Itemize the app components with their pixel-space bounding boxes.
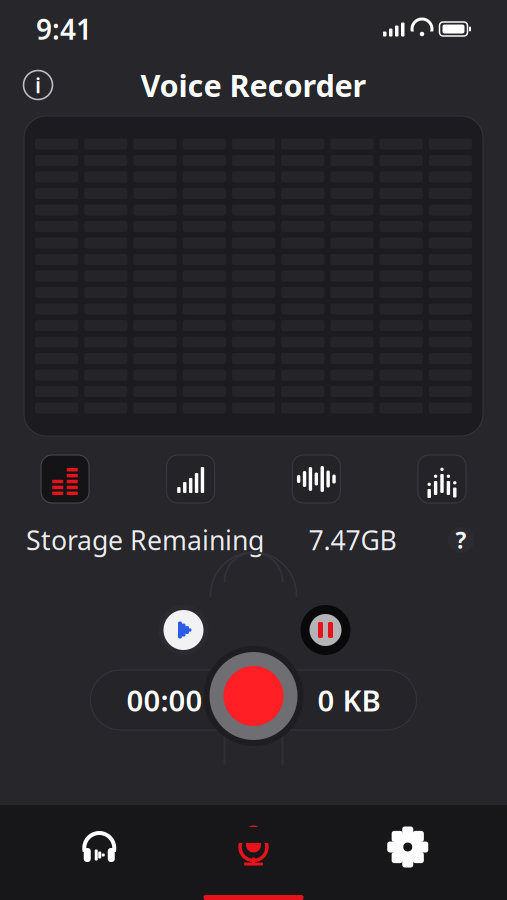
staticText: 00:00 bbox=[126, 680, 202, 719]
button[interactable]: Bar meter bbox=[36, 450, 94, 508]
staticText: 7.47GB bbox=[308, 522, 396, 558]
button[interactable]: Waveform bbox=[287, 450, 345, 508]
staticText: Storage Remaining bbox=[26, 522, 264, 558]
button[interactable]: Settings bbox=[353, 805, 463, 900]
button[interactable]: Record bbox=[198, 805, 308, 900]
button[interactable]: Record bbox=[200, 643, 306, 749]
staticText: i bbox=[35, 71, 41, 99]
button[interactable]: Spectrum bbox=[413, 450, 471, 508]
button[interactable]: Play bbox=[153, 600, 213, 660]
button[interactable]: Level bars bbox=[162, 450, 220, 508]
button[interactable]: Storage help bbox=[441, 520, 481, 560]
button[interactable]: Pause bbox=[295, 600, 355, 660]
staticText: ? bbox=[455, 525, 466, 555]
button[interactable]: Information bbox=[16, 63, 60, 107]
staticText: 9:41 bbox=[36, 10, 92, 48]
staticText: Voice Recorder bbox=[140, 65, 366, 105]
button[interactable]: Playback bbox=[44, 805, 154, 900]
staticText: 0 KB bbox=[317, 680, 380, 719]
